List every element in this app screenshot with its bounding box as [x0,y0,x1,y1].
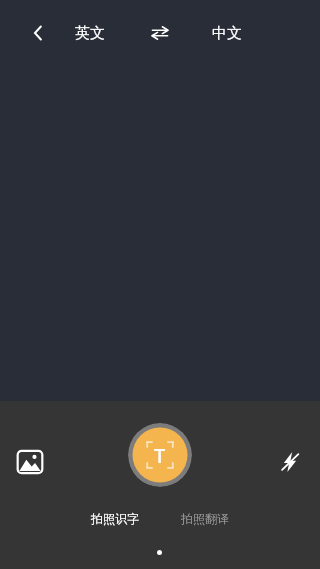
button[interactable]: Capture text [128,423,192,487]
staticText: 拍照识字 [91,511,139,526]
button[interactable]: 拍照识字 [77,506,153,530]
staticText: 英文 [75,24,105,43]
button[interactable]: 中文 [199,16,255,50]
button[interactable]: 拍照翻译 [167,506,243,530]
staticText: T [154,442,166,469]
staticText: 中文 [212,24,242,43]
button[interactable]: 英文 [62,16,118,50]
button[interactable]: Back [22,17,54,49]
button[interactable]: Gallery [8,440,52,484]
button[interactable]: Flash off [268,440,312,484]
staticText: 拍照翻译 [181,511,229,526]
button[interactable]: Swap languages [144,17,176,49]
